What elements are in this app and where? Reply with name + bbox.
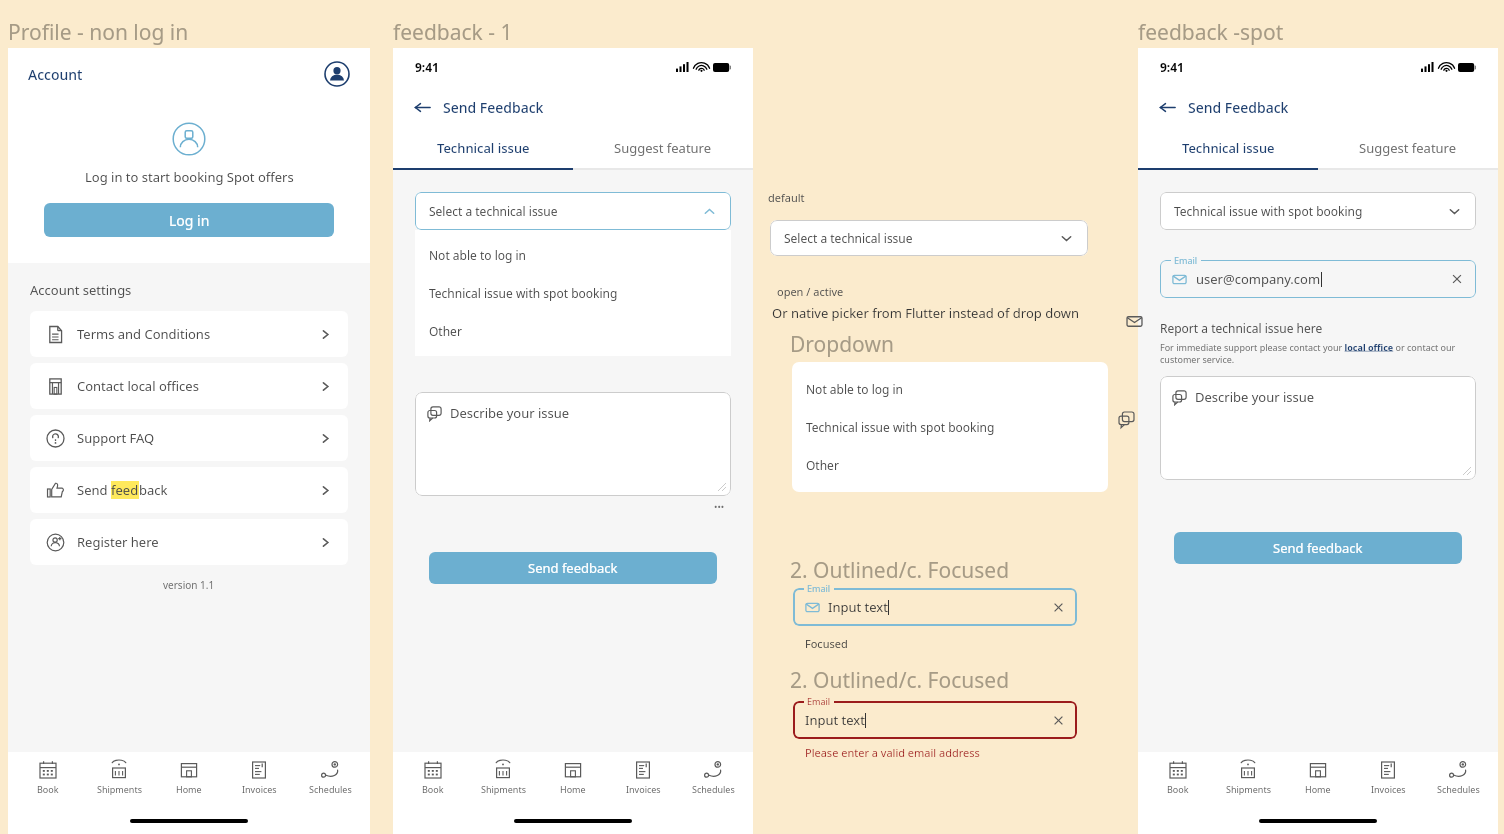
- staticText: 2. Outlined/c. Focused: [790, 556, 1010, 585]
- button[interactable]: Invoices: [1358, 760, 1418, 795]
- button[interactable]: Describe your issue: [1160, 376, 1476, 480]
- button[interactable]: Invoices: [229, 760, 289, 795]
- button[interactable]: Terms and Conditions: [30, 311, 348, 357]
- button[interactable]: Not able to log in: [415, 236, 731, 274]
- staticText: Describe your issue: [450, 404, 570, 422]
- staticText: Profile - non log in: [8, 18, 189, 47]
- staticText: Home: [560, 783, 586, 795]
- staticText: feedback - 1: [393, 18, 513, 47]
- button[interactable]: Not able to log in: [792, 370, 1108, 408]
- button[interactable]: Technical issue: [393, 128, 573, 168]
- staticText: 9:41: [415, 59, 439, 75]
- button[interactable]: Register here: [30, 519, 348, 565]
- staticText: Email: [807, 582, 831, 594]
- button[interactable]: Book: [1148, 760, 1208, 795]
- staticText: back: [139, 481, 168, 499]
- button[interactable]: Send: [30, 467, 348, 513]
- staticText: Schedules: [692, 783, 735, 795]
- staticText: Send feedback: [528, 559, 618, 577]
- staticText: Technical issue with spot booking: [806, 419, 995, 435]
- button[interactable]: Support FAQ: [30, 415, 348, 461]
- button[interactable]: Profile: [324, 61, 350, 87]
- staticText: Email: [807, 695, 831, 707]
- button[interactable]: Other: [792, 446, 1108, 484]
- staticText: Technical issue: [1182, 139, 1275, 157]
- button[interactable]: Clear: [1052, 601, 1065, 614]
- staticText: Describe your issue: [1195, 388, 1315, 406]
- button[interactable]: Suggest feature: [573, 128, 753, 168]
- staticText: For immediate support please contact you…: [1160, 341, 1476, 366]
- staticText: Log in to start booking Spot offers: [85, 168, 294, 186]
- staticText: Shipments: [97, 783, 142, 795]
- staticText: Book: [37, 783, 59, 795]
- staticText: feed: [111, 481, 139, 499]
- button[interactable]: Send feedback: [429, 552, 717, 584]
- button[interactable]: Select a technical issue: [415, 192, 731, 230]
- staticText: Or native picker from Flutter instead of…: [772, 304, 1080, 322]
- staticText: Not able to log in: [429, 247, 527, 263]
- staticText: Please enter a valid email address: [805, 745, 980, 760]
- staticText: Not able to log in: [806, 381, 904, 397]
- button[interactable]: Schedules: [300, 760, 360, 795]
- button[interactable]: Technical issue with spot booking: [415, 274, 731, 312]
- button[interactable]: Technical issue with spot booking: [1160, 192, 1476, 230]
- staticText: Dropdown: [790, 330, 894, 359]
- staticText: Terms and Conditions: [77, 325, 211, 343]
- button[interactable]: Home: [543, 760, 603, 795]
- staticText: user@company.com: [1196, 270, 1321, 288]
- button[interactable]: Select a technical issue: [770, 220, 1088, 256]
- button[interactable]: Clear: [1450, 272, 1464, 286]
- button[interactable]: Schedules: [683, 760, 743, 795]
- staticText: Schedules: [309, 783, 352, 795]
- staticText: Technical issue with spot booking: [1174, 203, 1363, 219]
- button[interactable]: Back: [1156, 96, 1178, 118]
- staticText: Schedules: [1437, 783, 1480, 795]
- staticText: Suggest feature: [614, 139, 712, 157]
- button[interactable]: Technical issue: [1138, 128, 1318, 168]
- staticText: default: [768, 190, 805, 205]
- staticText: Shipments: [481, 783, 526, 795]
- staticText: Report a technical issue here: [1160, 320, 1323, 336]
- button[interactable]: Shipments: [473, 760, 533, 795]
- button[interactable]: Home: [1288, 760, 1348, 795]
- staticText: Account settings: [30, 281, 132, 299]
- staticText: Select a technical issue: [429, 203, 558, 219]
- staticText: feedback -spot: [1138, 18, 1284, 47]
- button[interactable]: Suggest feature: [1318, 128, 1498, 168]
- staticText: Contact local offices: [77, 377, 199, 395]
- staticText: Send Feedback: [1188, 98, 1289, 117]
- button[interactable]: Contact local offices: [30, 363, 348, 409]
- staticText: Log in: [169, 211, 210, 230]
- button[interactable]: Technical issue with spot booking: [792, 408, 1108, 446]
- staticText: Home: [176, 783, 202, 795]
- button[interactable]: user@company.com: [1160, 260, 1476, 298]
- button[interactable]: Input text: [793, 588, 1077, 626]
- staticText: Other: [806, 457, 839, 473]
- button[interactable]: Clear: [1052, 714, 1065, 727]
- staticText: Technical issue with spot booking: [429, 285, 618, 301]
- staticText: Email: [1174, 254, 1198, 266]
- staticText: Technical issue: [437, 139, 530, 157]
- staticText: Invoices: [1371, 783, 1406, 795]
- button[interactable]: Other: [415, 312, 731, 350]
- button[interactable]: Input text: [793, 701, 1077, 739]
- staticText: Input text: [828, 598, 888, 616]
- button[interactable]: Book: [403, 760, 463, 795]
- staticText: Book: [1167, 783, 1189, 795]
- button[interactable]: Invoices: [613, 760, 673, 795]
- staticText: Shipments: [1226, 783, 1271, 795]
- button[interactable]: Back: [411, 96, 433, 118]
- staticText: Focused: [805, 636, 848, 651]
- staticText: Input text: [805, 711, 865, 729]
- button[interactable]: Describe your issue: [415, 392, 731, 496]
- button[interactable]: Home: [159, 760, 219, 795]
- staticText: 9:41: [1160, 59, 1184, 75]
- button[interactable]: Shipments: [89, 760, 149, 795]
- button[interactable]: Log in: [44, 203, 334, 237]
- button[interactable]: Book: [18, 760, 78, 795]
- staticText: version 1.1: [163, 578, 215, 592]
- button[interactable]: Shipments: [1218, 760, 1278, 795]
- button[interactable]: Schedules: [1428, 760, 1488, 795]
- button[interactable]: Send feedback: [1174, 532, 1462, 564]
- staticText: Register here: [77, 533, 159, 551]
